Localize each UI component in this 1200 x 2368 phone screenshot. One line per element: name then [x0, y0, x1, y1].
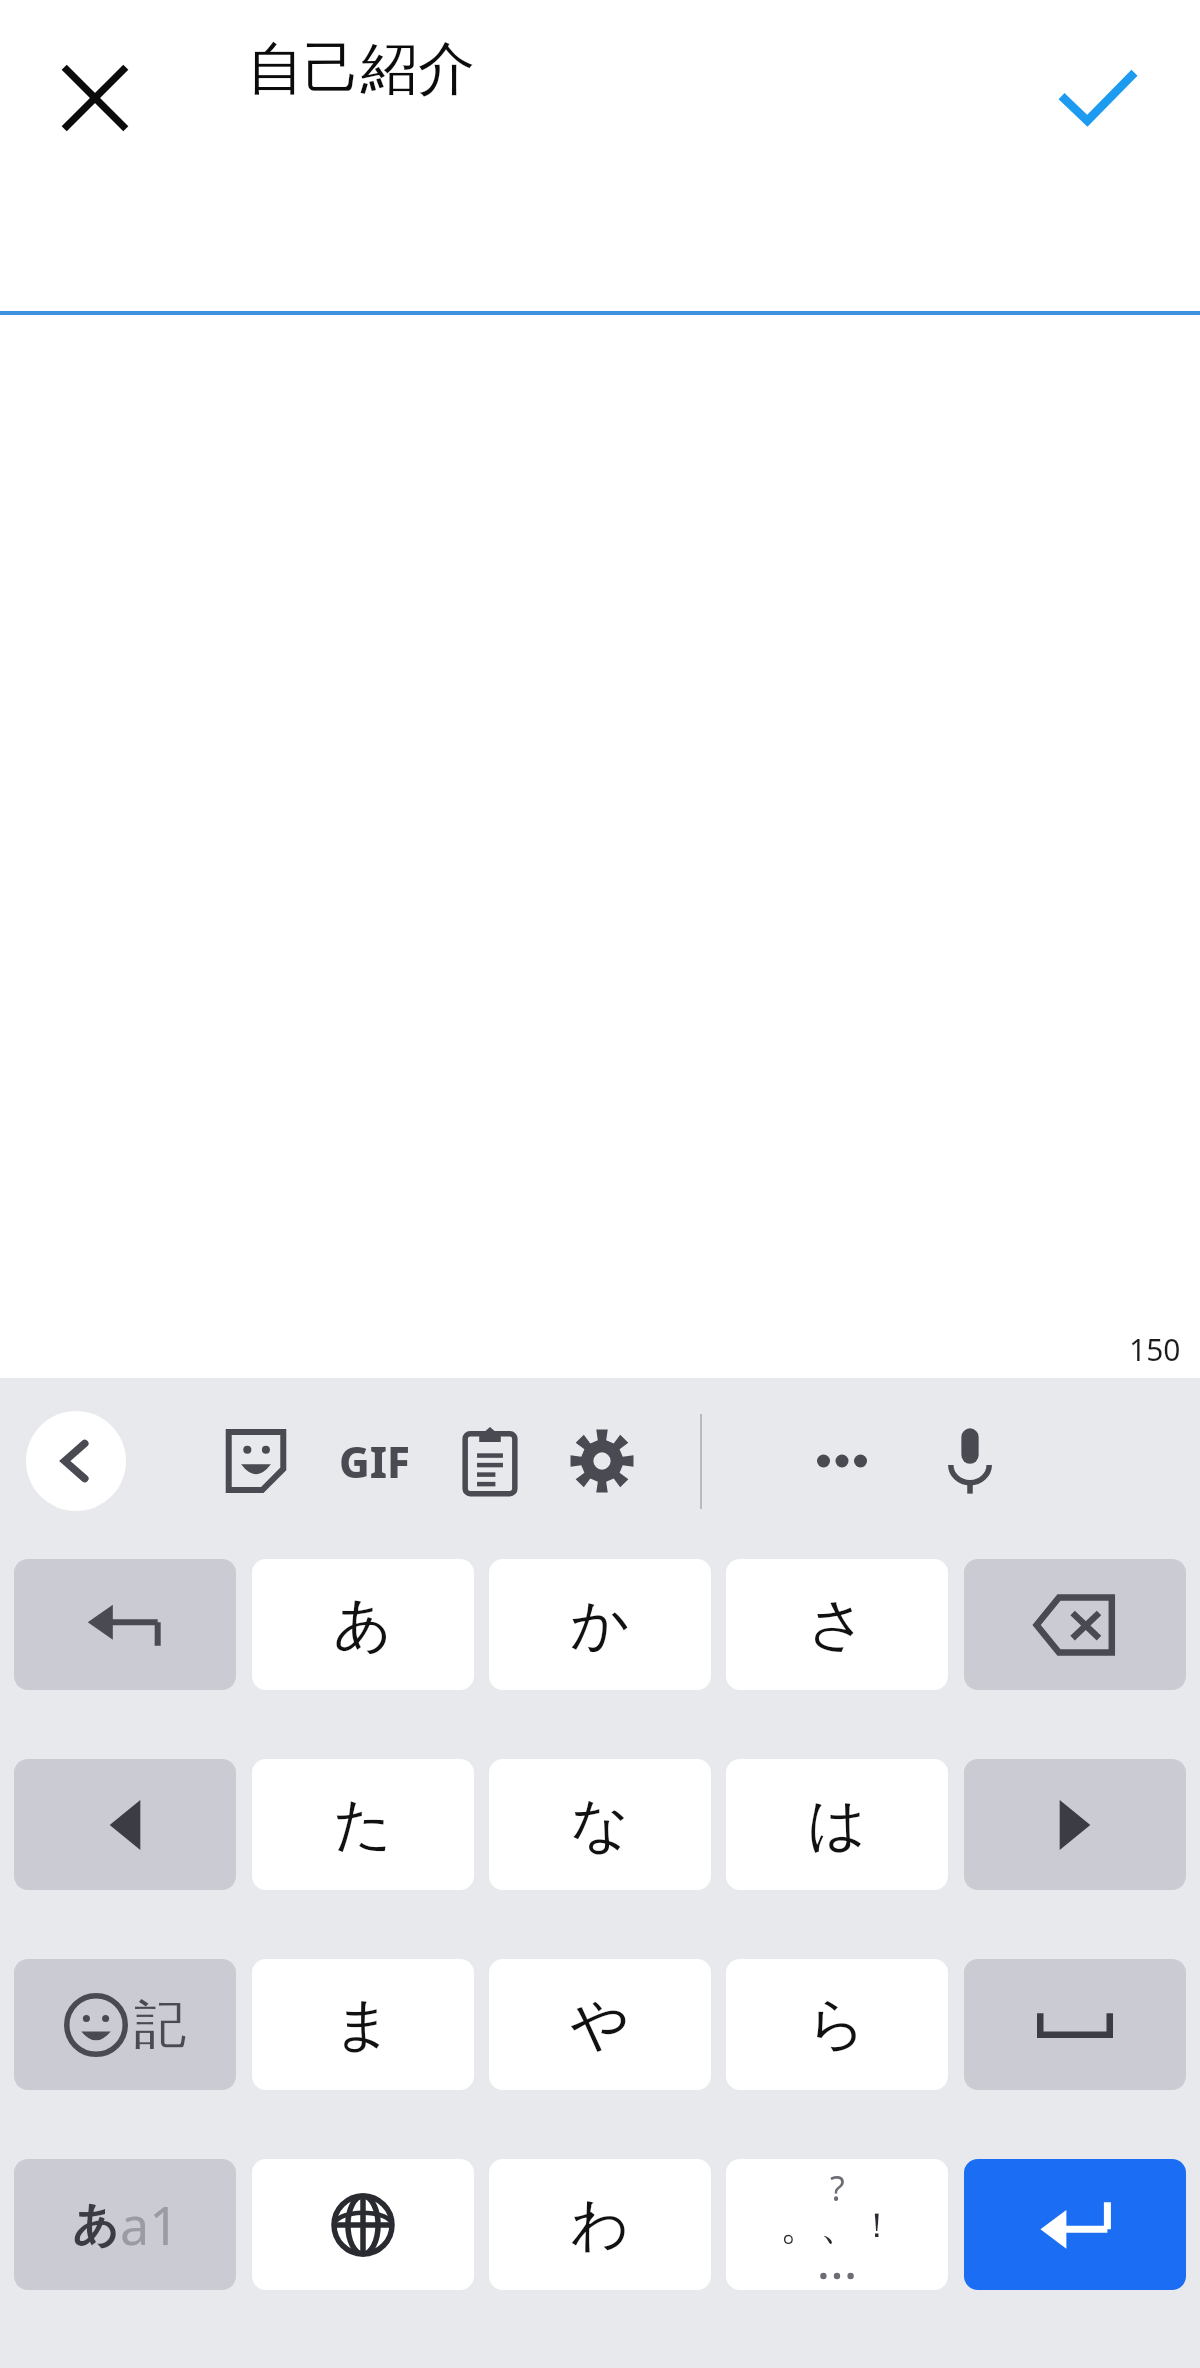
button[interactable]: Cursor right — [964, 1759, 1186, 1890]
staticText: ！ — [860, 2204, 894, 2247]
button[interactable]: Done — [1028, 30, 1168, 166]
staticText: GIF — [339, 1433, 410, 1490]
button[interactable]: は — [726, 1759, 948, 1890]
button[interactable]: GIF — [324, 1411, 424, 1511]
button[interactable]: Emoji and symbols — [14, 1959, 236, 2090]
staticText: か — [570, 1588, 630, 1661]
staticText: わ — [570, 2188, 630, 2261]
staticText: 。 — [780, 2200, 820, 2250]
button[interactable]: Space — [964, 1959, 1186, 2090]
staticText: や — [570, 1988, 630, 2061]
button[interactable]: Undo — [14, 1559, 236, 1690]
staticText: a1 — [120, 2189, 179, 2260]
button[interactable]: Cursor left — [14, 1759, 236, 1890]
button[interactable]: Punctuation — [726, 2159, 948, 2290]
button[interactable]: ら — [726, 1959, 948, 2090]
button[interactable]: な — [489, 1759, 711, 1890]
button[interactable]: Settings — [552, 1411, 652, 1511]
button[interactable]: Backspace — [964, 1559, 1186, 1690]
button[interactable]: ま — [252, 1959, 474, 2090]
button[interactable]: た — [252, 1759, 474, 1890]
staticText: た — [333, 1788, 393, 1861]
staticText: 、 — [820, 2200, 860, 2250]
button[interactable]: Switch input mode — [14, 2159, 236, 2290]
button[interactable]: Clipboard — [440, 1411, 540, 1511]
button[interactable]: Enter — [964, 2159, 1186, 2290]
button[interactable]: Back — [26, 1411, 126, 1511]
staticText: は — [807, 1788, 867, 1861]
staticText: あ — [72, 2196, 120, 2254]
staticText: あ — [333, 1588, 393, 1661]
button[interactable]: Stickers — [206, 1411, 306, 1511]
button[interactable]: Change language — [252, 2159, 474, 2290]
staticText: 記 — [134, 1992, 186, 2058]
button[interactable]: さ — [726, 1559, 948, 1690]
button[interactable]: か — [489, 1559, 711, 1690]
button[interactable]: あ — [252, 1559, 474, 1690]
button[interactable]: Close — [26, 30, 164, 166]
button[interactable]: More options — [792, 1411, 892, 1511]
staticText: な — [570, 1788, 630, 1861]
staticText: ? — [830, 2165, 845, 2211]
staticText: 自己紹介 — [247, 33, 475, 105]
staticText: 150 — [1129, 1329, 1181, 1370]
staticText: さ — [807, 1588, 867, 1661]
button[interactable]: Voice input — [920, 1411, 1020, 1511]
button[interactable]: わ — [489, 2159, 711, 2290]
staticText: ら — [807, 1988, 867, 2061]
staticText: ま — [333, 1988, 393, 2061]
button[interactable]: や — [489, 1959, 711, 2090]
